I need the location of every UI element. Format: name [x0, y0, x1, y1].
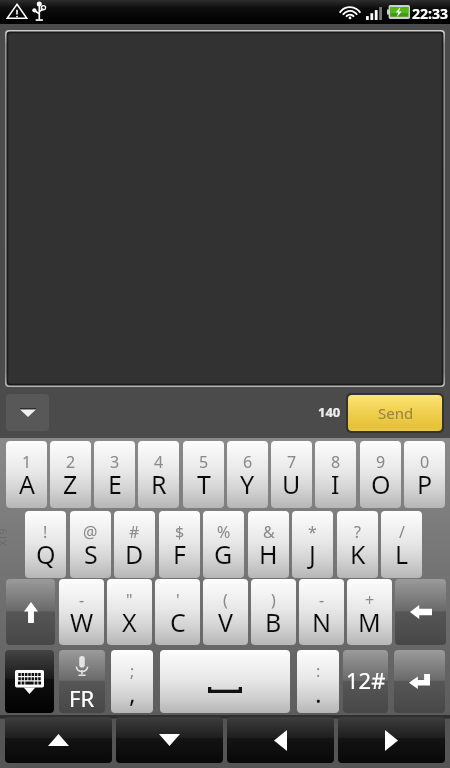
staticText: T: [197, 467, 211, 501]
staticText: M: [358, 605, 381, 639]
staticText: #: [129, 521, 140, 543]
staticText: Y: [240, 467, 255, 501]
staticText: ?: [354, 521, 361, 543]
button[interactable]: -: [299, 579, 344, 645]
staticText: ): [271, 589, 276, 611]
button[interactable]: Backspace: [395, 579, 446, 645]
button[interactable]: ): [251, 579, 296, 645]
button[interactable]: 7: [271, 441, 312, 508]
button[interactable]: Show options: [6, 394, 49, 431]
button[interactable]: Shift: [6, 579, 55, 645]
button[interactable]: 8: [315, 441, 356, 508]
button[interactable]: 4: [138, 441, 179, 508]
button[interactable]: #: [114, 511, 155, 578]
button[interactable]: %: [203, 511, 244, 578]
staticText: $: [175, 521, 185, 543]
button[interactable]: 9: [360, 441, 401, 508]
staticText: U: [282, 467, 301, 501]
staticText: :: [316, 660, 321, 682]
staticText: XT9: [0, 528, 10, 546]
staticText: 0: [420, 451, 430, 473]
staticText: J: [309, 537, 316, 571]
button[interactable]: Right: [338, 717, 445, 763]
staticText: .: [315, 676, 322, 707]
staticText: 9: [376, 451, 386, 473]
button[interactable]: Enter: [394, 650, 445, 713]
button[interactable]: Hide keyboard: [5, 650, 54, 713]
staticText: B: [265, 605, 282, 639]
staticText: FR: [69, 683, 95, 713]
button[interactable]: !: [25, 511, 66, 578]
staticText: E: [108, 467, 122, 501]
button[interactable]: $: [159, 511, 200, 578]
staticText: &: [263, 521, 275, 543]
staticText: S: [84, 537, 98, 571]
staticText: L: [395, 537, 409, 571]
button[interactable]: +: [347, 579, 392, 645]
staticText: 7: [287, 451, 297, 473]
button[interactable]: 5: [183, 441, 224, 508]
button[interactable]: ;: [111, 650, 153, 713]
button[interactable]: Voice input, French: [59, 650, 105, 713]
staticText: 3: [110, 451, 120, 473]
staticText: %: [217, 521, 231, 543]
staticText: G: [214, 537, 233, 571]
button[interactable]: Space: [160, 650, 290, 713]
button[interactable]: ': [155, 579, 200, 645]
staticText: 8: [331, 451, 341, 473]
staticText: A: [19, 467, 35, 501]
staticText: F: [173, 537, 186, 571]
button[interactable]: 1: [6, 441, 47, 508]
staticText: +: [365, 589, 375, 611]
staticText: H: [259, 537, 278, 571]
staticText: N: [312, 605, 332, 639]
button[interactable]: /: [381, 511, 422, 578]
staticText: 4: [154, 451, 164, 473]
staticText: 22:33: [412, 4, 448, 23]
button[interactable]: @: [70, 511, 111, 578]
button[interactable]: 3: [94, 441, 135, 508]
button[interactable]: Send: [348, 395, 442, 431]
staticText: ;: [130, 660, 135, 682]
staticText: 6: [243, 451, 253, 473]
staticText: R: [151, 467, 167, 501]
staticText: -: [319, 589, 325, 611]
staticText: 1: [22, 451, 32, 473]
staticText: C: [170, 605, 186, 639]
button[interactable]: [5, 30, 445, 387]
staticText: /: [399, 521, 405, 543]
button[interactable]: :: [297, 650, 339, 713]
button[interactable]: Down: [116, 717, 223, 763]
button[interactable]: 12#: [343, 650, 388, 713]
staticText: *: [308, 521, 317, 543]
button[interactable]: ": [107, 579, 152, 645]
button[interactable]: Left: [227, 717, 334, 763]
staticText: Send: [378, 403, 414, 423]
staticText: V: [218, 605, 234, 639]
staticText: ,: [129, 676, 136, 707]
staticText: 5: [199, 451, 209, 473]
staticText: X: [122, 605, 137, 639]
button[interactable]: (: [203, 579, 248, 645]
staticText: -: [79, 589, 85, 611]
staticText: K: [350, 537, 366, 571]
button[interactable]: 2: [50, 441, 91, 508]
button[interactable]: &: [248, 511, 289, 578]
staticText: (: [223, 589, 228, 611]
staticText: I: [331, 467, 340, 501]
staticText: D: [125, 537, 144, 571]
staticText: 2: [66, 451, 76, 473]
button[interactable]: *: [292, 511, 333, 578]
button[interactable]: -: [59, 579, 104, 645]
staticText: Q: [36, 537, 56, 571]
button[interactable]: Up: [5, 717, 112, 763]
staticText: ": [126, 589, 133, 611]
button[interactable]: ?: [337, 511, 378, 578]
staticText: !: [43, 521, 48, 543]
button[interactable]: 0: [404, 441, 445, 508]
staticText: @: [83, 521, 98, 543]
button[interactable]: 6: [227, 441, 268, 508]
staticText: P: [417, 467, 433, 501]
staticText: ': [176, 589, 180, 611]
staticText: W: [70, 605, 94, 639]
